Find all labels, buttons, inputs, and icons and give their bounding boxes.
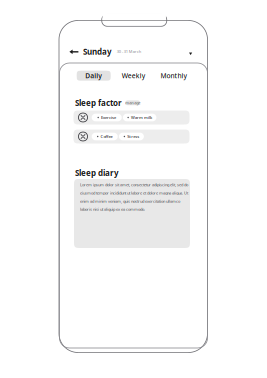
staticText: Coffee — [100, 134, 112, 139]
staticText: Sunday — [83, 46, 112, 57]
staticText: Sleep diary — [75, 167, 119, 178]
button[interactable]: More options — [186, 49, 195, 58]
staticText: Stress — [127, 134, 139, 139]
staticText: Warm milk — [131, 115, 152, 120]
button[interactable]: Remove sleep factor — [78, 113, 87, 122]
staticText: Weekly — [122, 71, 146, 80]
button[interactable]: Weekly — [117, 71, 151, 81]
staticText: Exercise — [101, 115, 116, 120]
button[interactable]: Remove sleep factor — [78, 132, 87, 141]
staticText: Sleep factor — [75, 97, 122, 108]
button[interactable]: Monthly — [156, 71, 192, 81]
staticText: Lorem ipsum dolor sit amet, consectetur … — [80, 182, 188, 212]
button[interactable]: Back — [67, 47, 81, 57]
button[interactable]: Daily — [77, 71, 111, 81]
staticText: manage — [125, 100, 140, 105]
staticText: Daily — [85, 71, 102, 80]
button[interactable]: manage — [125, 100, 140, 105]
staticText: Monthly — [160, 71, 187, 80]
staticText: 30 - 31 March — [117, 49, 142, 54]
